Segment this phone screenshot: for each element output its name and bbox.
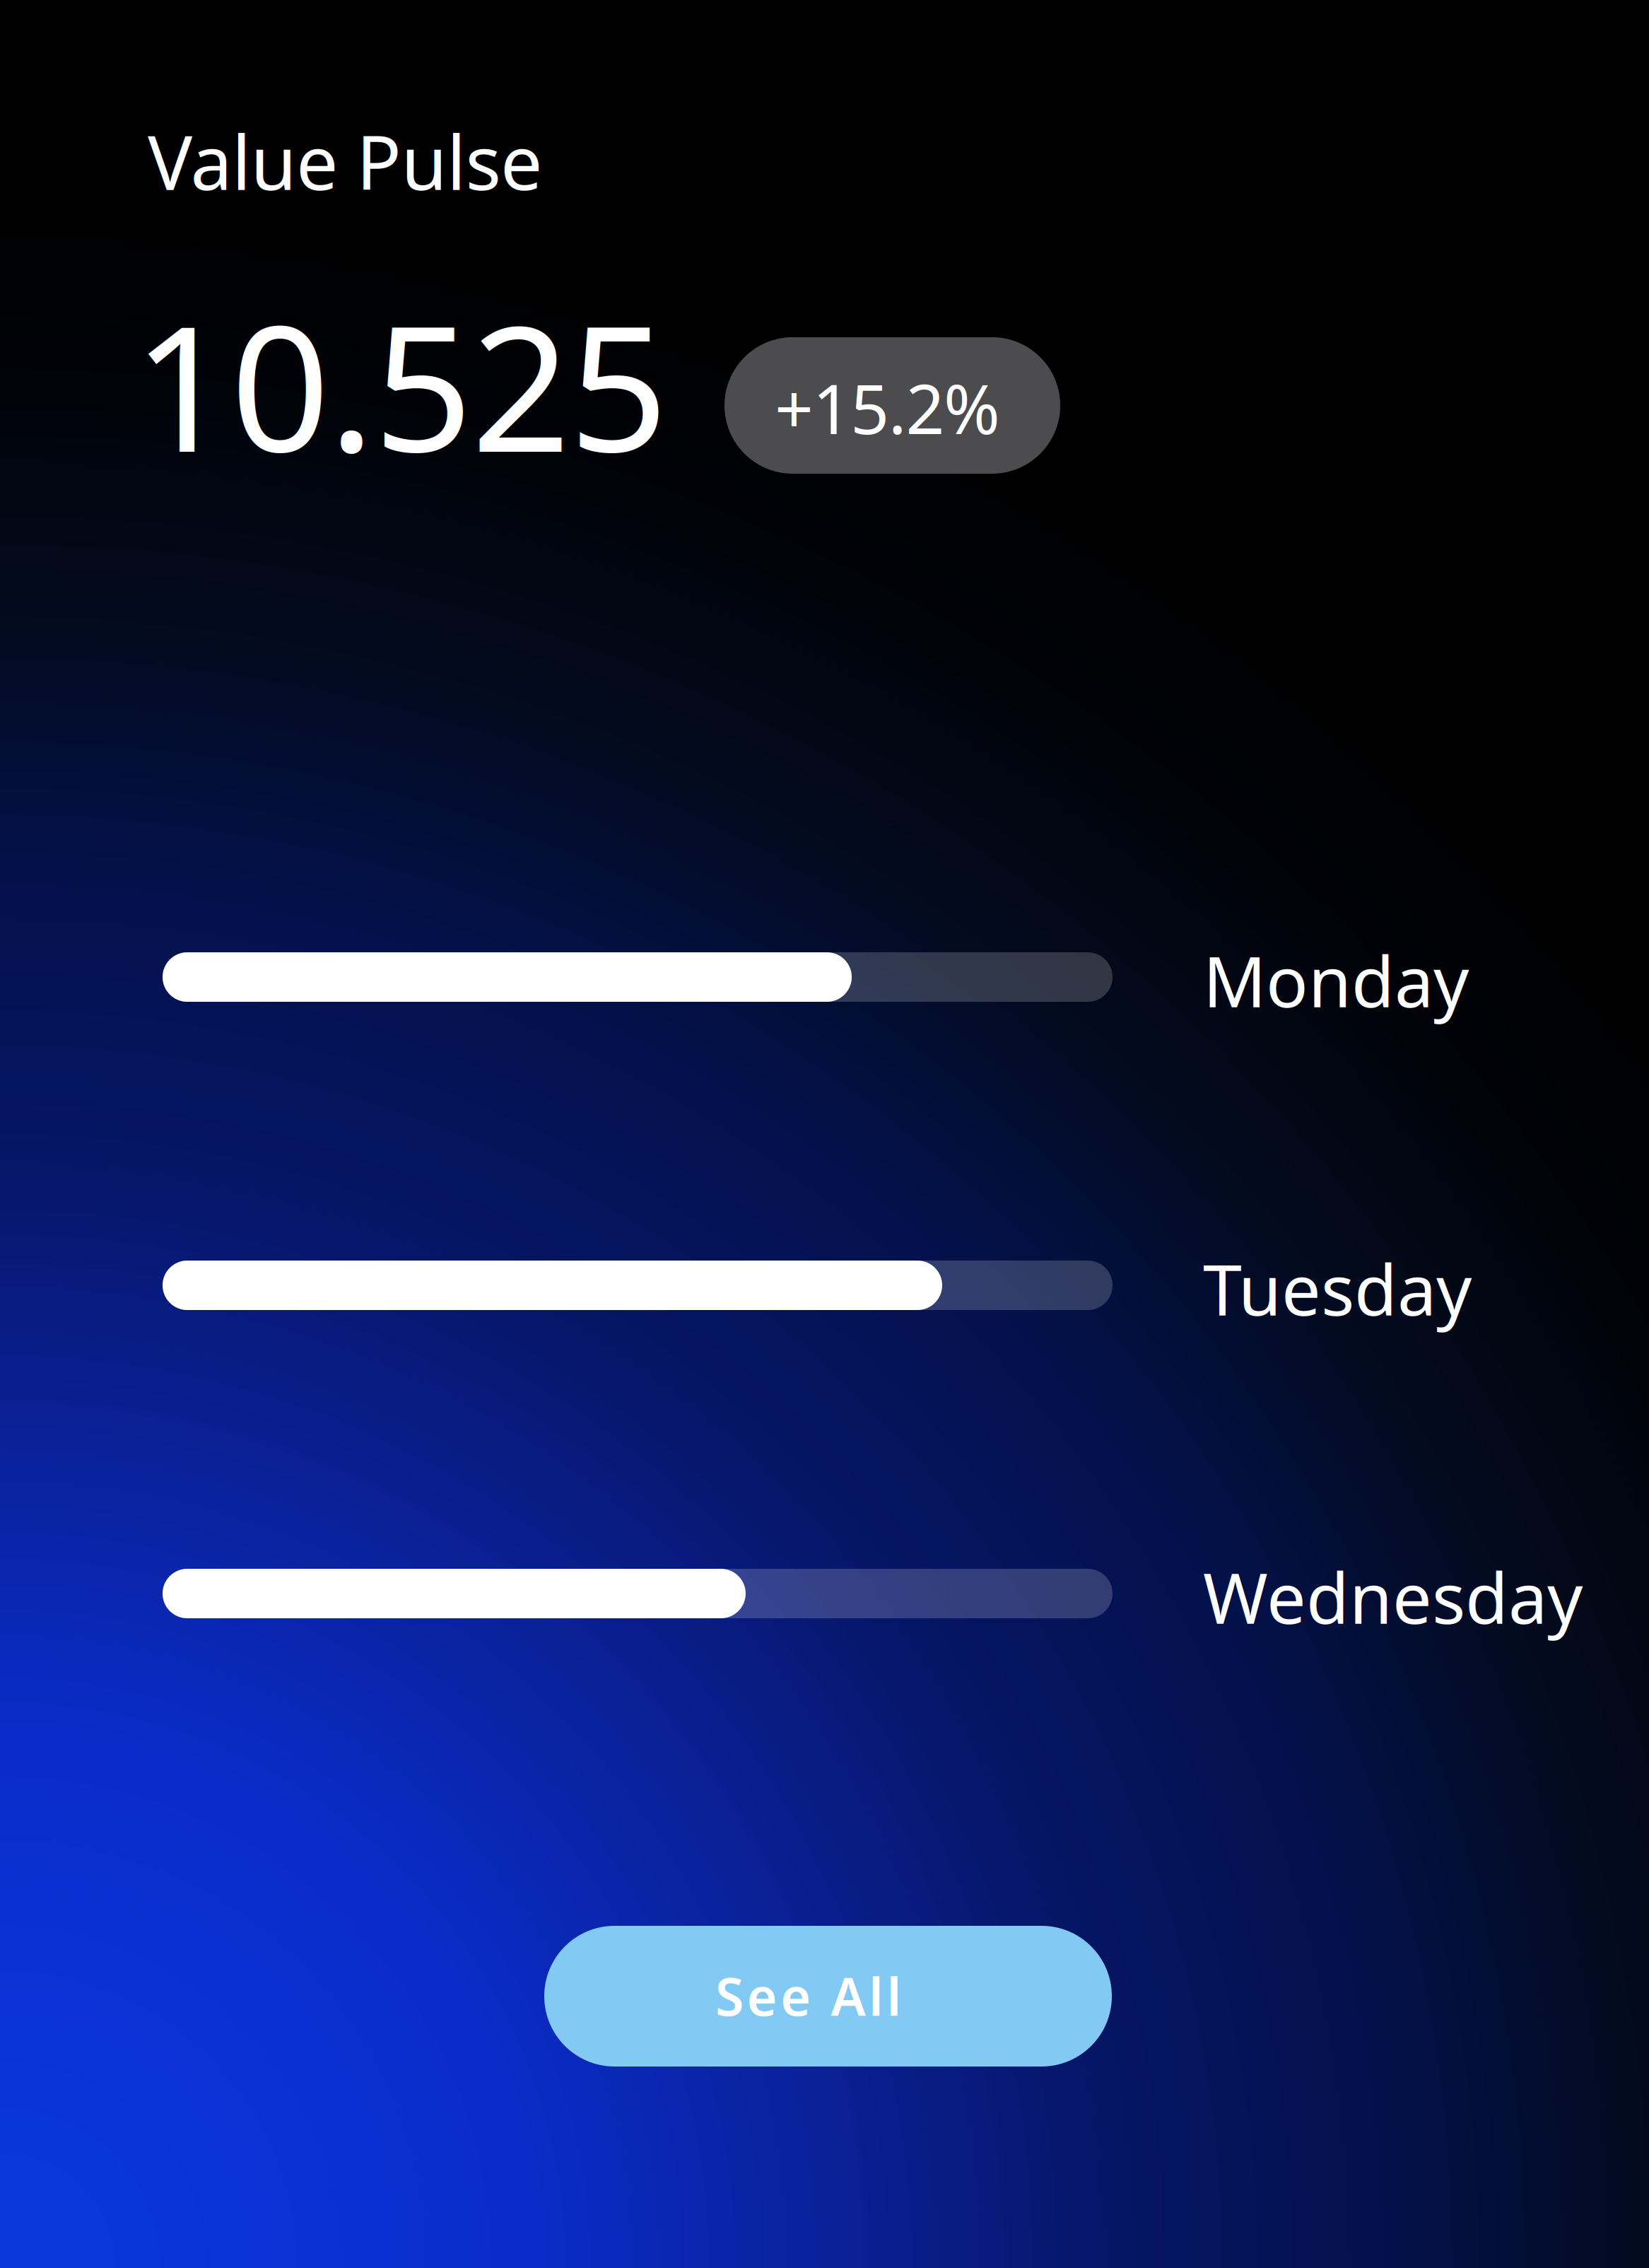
staticText: +15.2% — [775, 363, 1000, 453]
staticText: Monday — [1203, 934, 1469, 1027]
staticText: Tuesday — [1203, 1242, 1472, 1335]
staticText: 10.525 — [133, 269, 668, 500]
staticText: Wednesday — [1203, 1550, 1583, 1643]
staticText: Value Pulse — [148, 112, 542, 211]
button[interactable]: See All — [544, 1926, 1112, 2067]
staticText: See All — [715, 1961, 902, 2030]
